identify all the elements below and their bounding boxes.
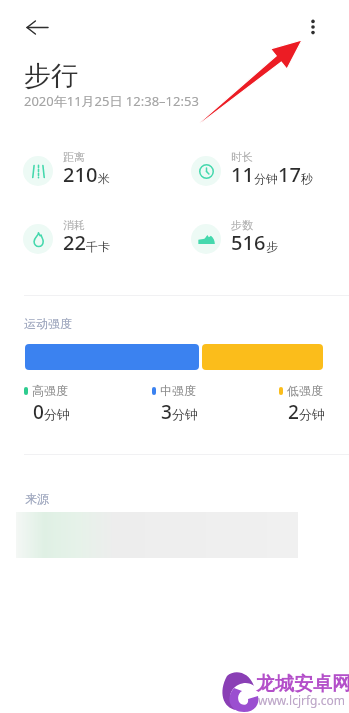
staticText: 11 xyxy=(231,161,254,188)
staticText: 分钟 xyxy=(254,171,278,186)
staticText: 22 xyxy=(63,229,86,256)
staticText: 516 xyxy=(231,229,266,256)
staticText: 2 xyxy=(288,399,299,425)
staticText: 0 xyxy=(33,399,44,425)
button[interactable]: Back xyxy=(15,5,59,49)
staticText: 来源 xyxy=(25,491,49,506)
staticText: 步行 xyxy=(24,59,78,93)
staticText: 中强度 xyxy=(160,383,196,398)
staticText: 米 xyxy=(98,171,110,186)
staticText: 龙城安卓网 xyxy=(256,672,349,696)
staticText: 消耗 xyxy=(63,218,85,232)
staticText: 3 xyxy=(161,399,172,425)
staticText: 210 xyxy=(63,161,98,188)
staticText: 分钟 xyxy=(44,406,70,422)
staticText: 秒 xyxy=(301,171,313,186)
staticText: 分钟 xyxy=(172,406,198,422)
staticText: 运动强度 xyxy=(24,316,72,331)
staticText: 2020年11月25日 12:38–12:53 xyxy=(24,92,199,110)
staticText: 高强度 xyxy=(32,383,68,398)
staticText: 距离 xyxy=(63,150,85,164)
staticText: 步 xyxy=(266,239,278,254)
staticText: 千卡 xyxy=(86,239,110,254)
staticText: 时长 xyxy=(231,150,253,164)
staticText: 17 xyxy=(278,161,301,188)
staticText: www.lcjrfg.com xyxy=(258,692,345,708)
button[interactable]: More options xyxy=(291,5,335,49)
staticText: 步数 xyxy=(231,218,253,232)
staticText: 分钟 xyxy=(299,406,325,422)
staticText: 低强度 xyxy=(287,383,323,398)
